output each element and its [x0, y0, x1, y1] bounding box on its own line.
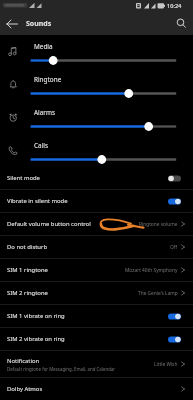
staticText: 10:24	[167, 2, 182, 10]
staticText: SIM 1 vibrate on ring	[7, 312, 65, 320]
button[interactable]: Dolby Atmos	[0, 378, 193, 400]
staticText: Vibrate in silent mode	[7, 197, 68, 205]
button[interactable]: Do not disturb	[0, 236, 193, 258]
staticText: Sounds	[26, 19, 52, 29]
button[interactable]: Alarms	[0, 101, 193, 134]
button[interactable]: Media	[0, 35, 193, 68]
staticText: SIM 2 ringtone	[7, 289, 48, 297]
staticText: Silent mode	[7, 174, 40, 182]
staticText: Off	[170, 244, 178, 251]
button[interactable]: SIM 1 vibrate on ring	[0, 305, 193, 327]
staticText: Dolby Atmos	[7, 385, 43, 393]
button[interactable]: Ringtone	[0, 68, 193, 101]
staticText: Calls	[34, 141, 48, 150]
staticText: Ringtone volume	[139, 221, 178, 228]
staticText: Default volume button control	[7, 220, 91, 228]
staticText: The Genie's Lamp	[138, 290, 178, 297]
staticText: Default ringtone for Messaging, Email, a…	[7, 366, 116, 372]
staticText: SIM 2 vibrate on ring	[7, 335, 65, 343]
staticText: SIM 1 ringtone	[7, 266, 48, 274]
staticText: Notification	[7, 357, 40, 365]
staticText: Do not disturb	[7, 243, 48, 251]
staticText: Media	[34, 42, 53, 51]
button[interactable]: Default volume button control	[0, 213, 193, 235]
staticText: Little Wish	[154, 361, 178, 368]
staticText: Alarms	[34, 108, 55, 117]
button[interactable]: Notification	[0, 351, 193, 377]
button[interactable]: Calls	[0, 134, 193, 167]
button[interactable]: Search	[169, 12, 193, 35]
staticText: Mozart 40th Symphony	[125, 267, 178, 274]
button[interactable]: Vibrate in silent mode	[0, 190, 193, 212]
button[interactable]: Silent mode	[0, 167, 193, 189]
staticText: Ringtone	[34, 75, 62, 84]
button[interactable]: SIM 2 vibrate on ring	[0, 328, 193, 350]
button[interactable]: SIM 2 ringtone	[0, 282, 193, 304]
button[interactable]: SIM 1 ringtone	[0, 259, 193, 281]
button[interactable]: Navigate up	[0, 12, 24, 35]
